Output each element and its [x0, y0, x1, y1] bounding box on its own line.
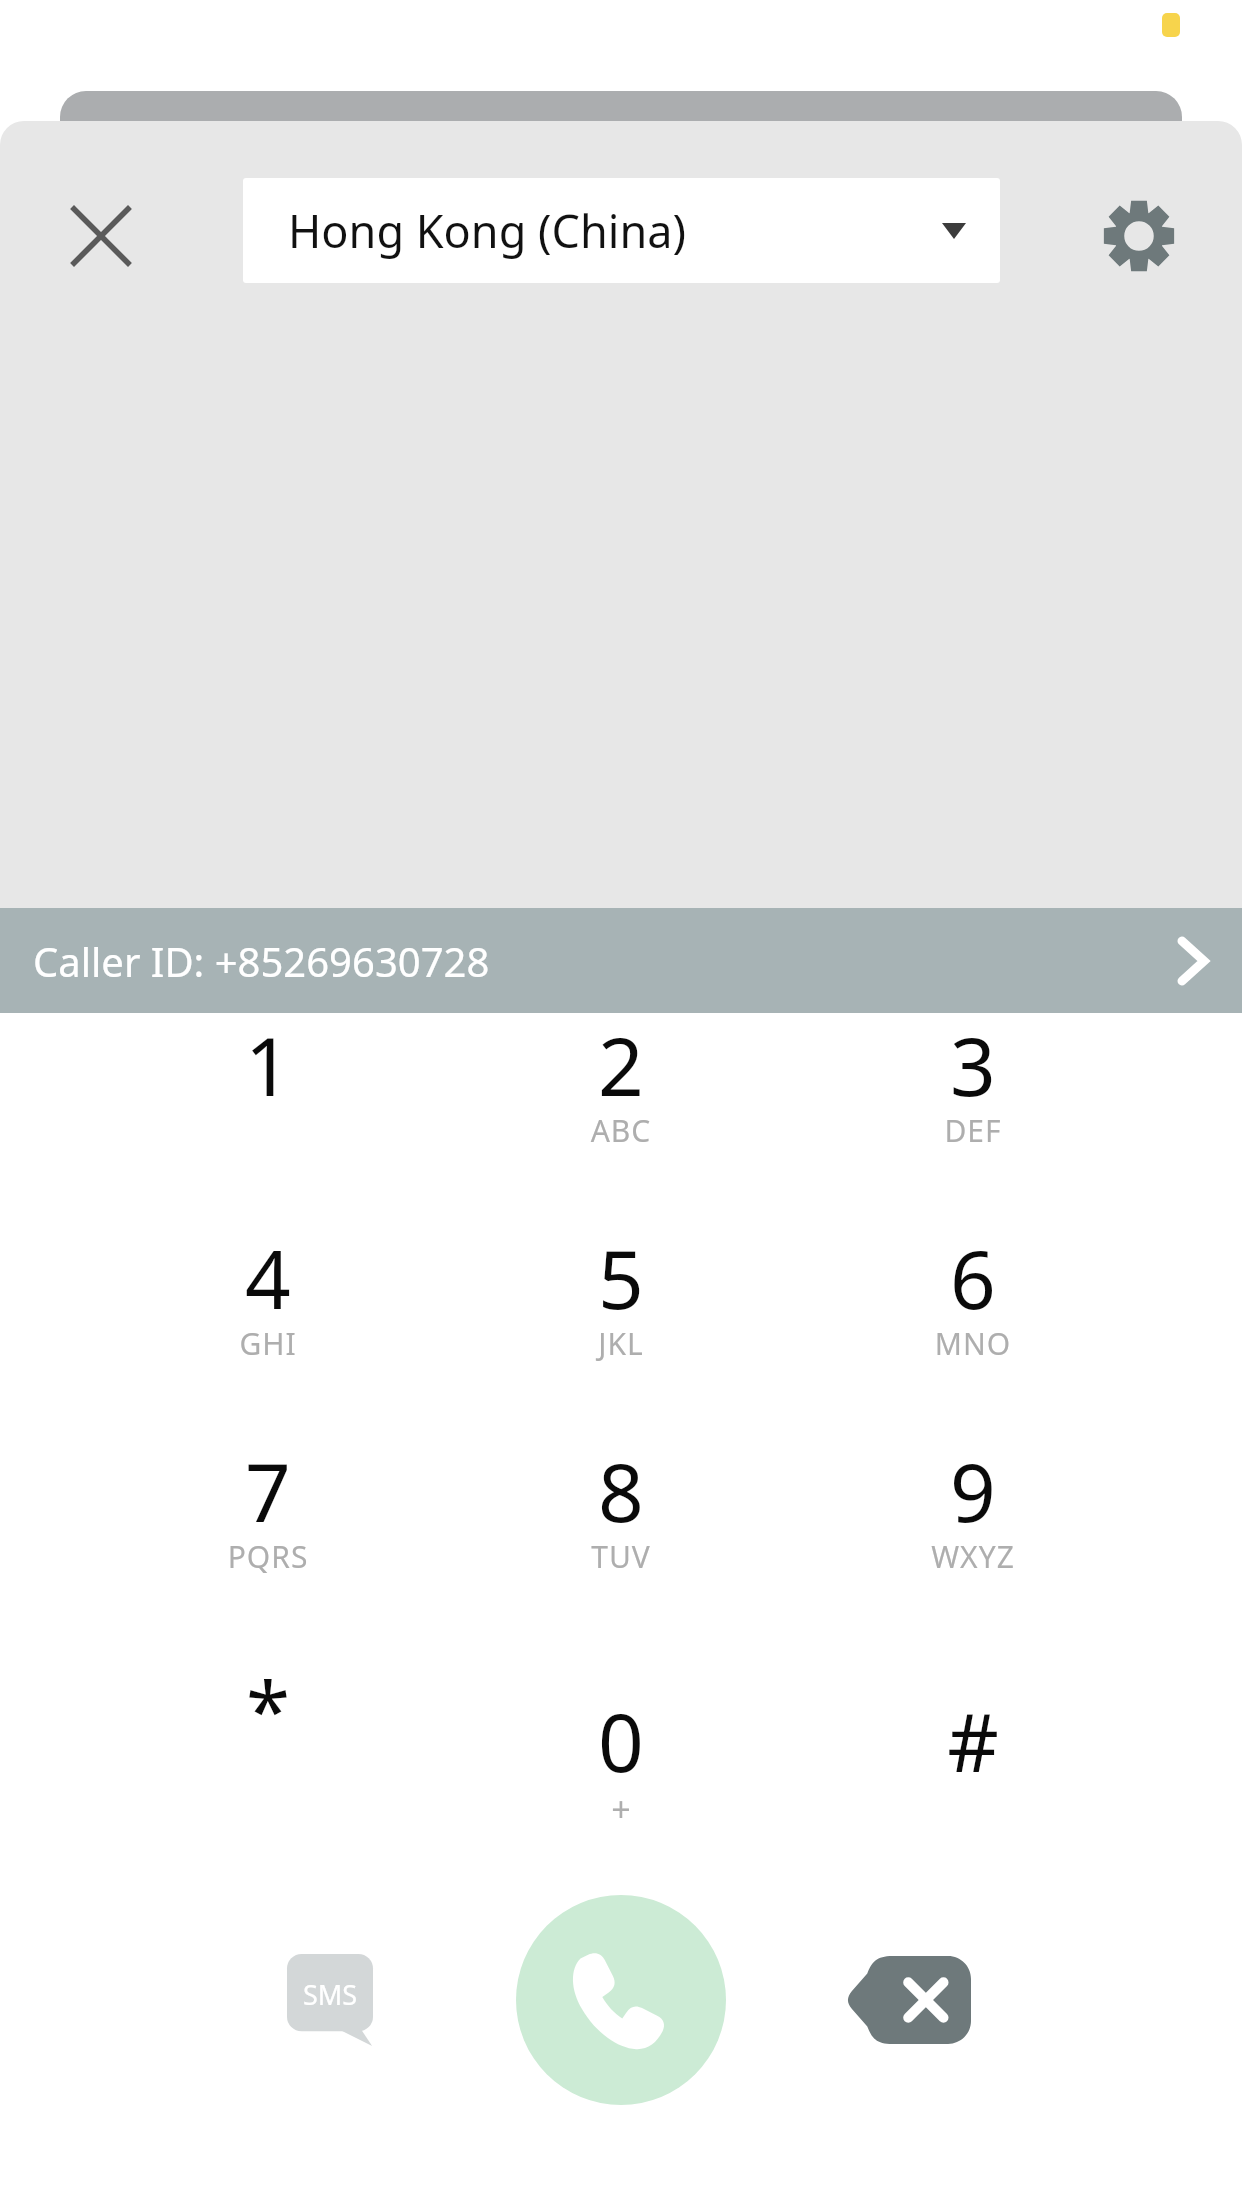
staticText: PQRS	[118, 1536, 418, 1577]
button[interactable]: Caller ID: +85269630728	[0, 908, 1242, 1013]
staticText: Hong Kong (China)	[288, 200, 686, 261]
button[interactable]: *	[118, 1648, 418, 1848]
button[interactable]: 3	[823, 1010, 1123, 1210]
staticText: 8	[471, 1436, 771, 1545]
staticText: *	[118, 1654, 418, 1763]
button[interactable]: Call	[516, 1895, 726, 2105]
button[interactable]: Delete	[820, 1910, 1000, 2090]
staticText: GHI	[118, 1323, 418, 1364]
staticText: TUV	[471, 1536, 771, 1577]
button[interactable]: 7	[118, 1436, 418, 1636]
button[interactable]: #	[823, 1648, 1123, 1848]
staticText: 3	[823, 1010, 1123, 1119]
staticText: 0	[471, 1686, 771, 1795]
staticText: WXYZ	[823, 1536, 1123, 1577]
button[interactable]: 5	[471, 1223, 771, 1423]
button[interactable]: Send SMS	[240, 1910, 420, 2090]
staticText: 6	[823, 1223, 1123, 1332]
staticText: 5	[471, 1223, 771, 1332]
button[interactable]: Hong Kong (China)	[243, 178, 1000, 283]
button[interactable]: Settings	[1079, 176, 1199, 296]
staticText: ABC	[471, 1110, 771, 1151]
staticText: 1	[118, 1010, 418, 1119]
button[interactable]: 2	[471, 1010, 771, 1210]
staticText: MNO	[823, 1323, 1123, 1364]
staticText: 2	[471, 1010, 771, 1119]
button[interactable]: 6	[823, 1223, 1123, 1423]
button[interactable]: 9	[823, 1436, 1123, 1636]
button[interactable]: 4	[118, 1223, 418, 1423]
staticText: JKL	[471, 1323, 771, 1364]
staticText: Caller ID: +85269630728	[33, 934, 490, 988]
staticText: 9	[823, 1436, 1123, 1545]
button[interactable]: 1	[118, 1010, 418, 1210]
staticText: 7	[118, 1436, 418, 1545]
staticText: +	[471, 1786, 771, 1832]
staticText: SMS	[287, 1976, 373, 2013]
button[interactable]: 8	[471, 1436, 771, 1636]
staticText: #	[823, 1686, 1123, 1795]
staticText: 4	[118, 1223, 418, 1332]
staticText: DEF	[823, 1110, 1123, 1151]
button[interactable]: Close	[41, 176, 161, 296]
button[interactable]: 0	[471, 1648, 771, 1878]
